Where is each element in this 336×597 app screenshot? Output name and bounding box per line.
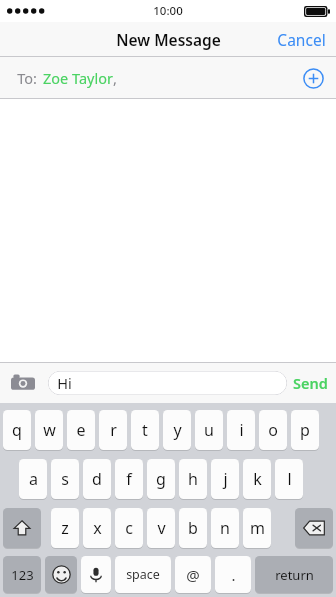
button[interactable]: Dictate [81,556,111,593]
button[interactable]: e [67,410,95,450]
staticText: return [275,566,314,584]
staticText: o [268,419,278,441]
staticText: m [250,517,265,539]
staticText: . [231,565,236,585]
button[interactable]: space [115,556,171,593]
staticText: s [61,468,69,490]
button[interactable]: v [147,508,175,548]
staticText: l [287,468,292,490]
staticText: t [142,419,148,441]
button[interactable]: j [211,459,239,499]
staticText: h [188,468,198,490]
staticText: Send [293,373,328,393]
button[interactable]: x [83,508,111,548]
button[interactable]: i [227,410,255,450]
staticText: Cancel [277,29,326,50]
button[interactable]: @ [175,556,211,593]
button[interactable]: Camera [11,373,35,393]
staticText: j [223,468,228,490]
button[interactable]: Cancel [267,22,336,57]
staticText: w [43,419,56,441]
staticText: q [12,419,22,441]
button[interactable]: b [179,508,207,548]
staticText: y [173,419,182,441]
button[interactable]: h [179,459,207,499]
staticText: Hi [57,373,72,393]
button[interactable]: y [163,410,191,450]
button[interactable]: Shift [3,508,41,548]
button[interactable]: o [259,410,287,450]
staticText: b [188,517,198,539]
button[interactable]: f [115,459,143,499]
staticText: New Message [116,29,221,50]
staticText: Zoe Taylor [43,68,113,88]
staticText: f [126,468,132,490]
button[interactable]: Send [285,367,336,399]
staticText: p [300,419,310,441]
staticText: e [76,419,86,441]
button[interactable]: q [3,410,31,450]
button[interactable]: d [83,459,111,499]
staticText: 123 [11,566,34,584]
button[interactable]: t [131,410,159,450]
button[interactable]: return [255,556,333,593]
button[interactable]: To: [0,57,336,99]
button[interactable]: z [51,508,79,548]
staticText: space [126,566,160,583]
staticText: 10:00 [153,3,183,19]
staticText: r [110,419,117,441]
button[interactable]: m [243,508,271,548]
staticText: a [29,468,38,490]
button[interactable]: a [19,459,47,499]
button[interactable]: w [35,410,63,450]
staticText: n [220,517,230,539]
button[interactable]: c [115,508,143,548]
button[interactable]: Hi [48,371,287,395]
button[interactable]: p [291,410,319,450]
button[interactable]: Backspace [295,508,333,548]
staticText: k [253,468,262,490]
button[interactable]: s [51,459,79,499]
staticText: i [239,419,244,441]
button[interactable]: l [275,459,303,499]
button[interactable]: u [195,410,223,450]
staticText: u [204,419,214,441]
staticText: z [61,517,69,539]
staticText: c [125,517,133,539]
staticText: d [92,468,102,490]
staticText: v [157,517,166,539]
button[interactable]: Add contact [303,68,324,89]
staticText: x [93,517,102,539]
staticText: g [156,468,166,490]
button[interactable]: k [243,459,271,499]
button[interactable]: 123 [3,556,41,593]
button[interactable]: r [99,410,127,450]
button[interactable]: n [211,508,239,548]
staticText: , [113,68,117,88]
button[interactable]: Emoji [45,556,77,593]
button[interactable]: . [215,556,251,593]
staticText: To: [17,68,37,88]
button[interactable]: g [147,459,175,499]
staticText: @ [186,565,200,585]
